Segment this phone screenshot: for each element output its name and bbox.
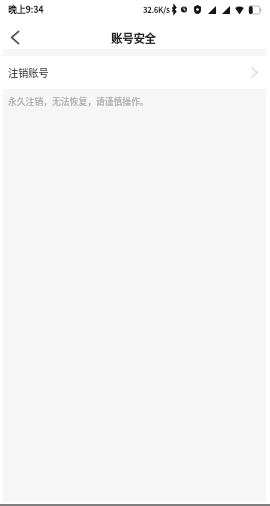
staticText: 永久注销，无法恢复，请谨慎操作。	[8, 95, 149, 108]
staticText: 注销账号	[8, 65, 49, 80]
staticText: 晚上9:34	[8, 3, 44, 16]
button[interactable]: 注销账号	[0, 56, 270, 89]
button[interactable]: Back	[0, 22, 30, 52]
staticText: 32.6K/s	[143, 4, 170, 15]
staticText: 账号安全	[111, 30, 156, 46]
